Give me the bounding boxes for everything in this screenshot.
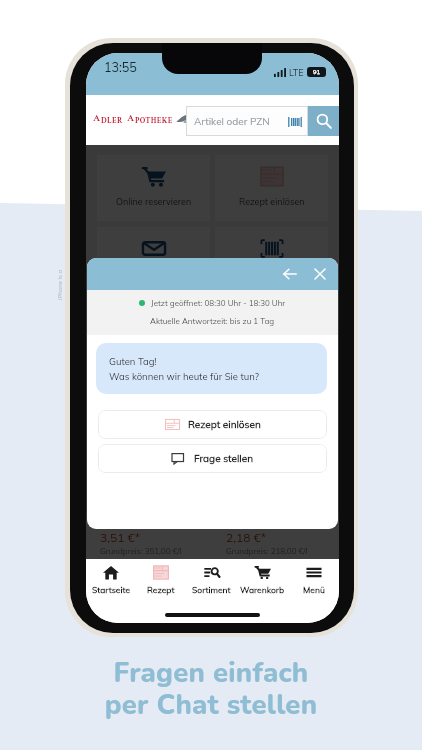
button[interactable]: Rezept einlösen [98, 410, 327, 439]
button[interactable]: Suchen [308, 106, 339, 136]
staticText: A [127, 112, 135, 125]
staticText: Grundpreis: 218,00 €/l [226, 546, 308, 556]
staticText: POTHEKE [135, 115, 173, 125]
button[interactable]: Online reservieren [97, 155, 210, 221]
staticText: Aktuelle Antwortzeit: bis zu 1 Tag [150, 316, 275, 326]
staticText: Grundpreis: 351,00 €/l [100, 546, 182, 556]
staticText: Fragen einfach per Chat stellen [0, 654, 422, 723]
staticText: Online reservieren [116, 196, 192, 207]
button[interactable]: Warenkorb [237, 559, 288, 623]
button[interactable]: Scanner [215, 227, 328, 293]
button[interactable]: Artikel oder PZN [186, 106, 308, 136]
staticText: Artikel oder PZN [194, 115, 270, 128]
staticText: Sortiment [192, 584, 231, 595]
button[interactable]: Startseite [86, 559, 136, 623]
staticText: Warenkorb [240, 584, 285, 595]
staticText: Was können wir heute für Sie tun? [109, 370, 260, 382]
button[interactable]: Rezept einlösen [215, 155, 328, 221]
staticText: iPhone is a trademark of Apple Inc. [56, 270, 64, 300]
button[interactable]: Frage stellen [98, 444, 327, 473]
staticText: Rezept [147, 584, 175, 595]
staticText: LTE [289, 67, 304, 78]
staticText: Scanner [254, 268, 289, 279]
staticText: 13:55 [104, 59, 137, 75]
staticText: Frage stellen [194, 452, 254, 465]
staticText: A [93, 112, 101, 125]
staticText: Menü [303, 584, 325, 595]
button[interactable]: Menü [288, 559, 339, 623]
button[interactable]: Sortiment [186, 559, 237, 623]
button[interactable]: Kontakt [97, 227, 210, 293]
staticText: Rezept einlösen [239, 196, 305, 207]
staticText: 2,18 €* [226, 530, 267, 545]
button[interactable]: Rezept [136, 559, 186, 623]
staticText: 91 [313, 68, 321, 76]
button[interactable]: Schließen [308, 262, 332, 286]
staticText: Rezept einlösen [188, 418, 261, 431]
staticText: 3,51 €* [100, 530, 141, 545]
staticText: Guten Tag! [109, 355, 157, 367]
button[interactable]: Zurück [278, 262, 302, 286]
staticText: Jetzt geöffnet: 08:30 Uhr - 18:30 Uhr [151, 298, 286, 308]
staticText: Startseite [92, 584, 131, 595]
staticText: DLER [101, 115, 123, 125]
